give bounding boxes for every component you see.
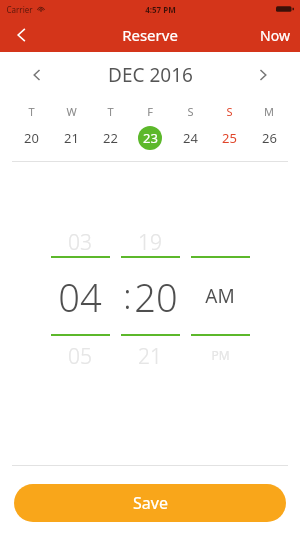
- button[interactable]: Now: [260, 26, 290, 45]
- staticText: 20: [24, 129, 39, 147]
- staticText: 24: [183, 129, 198, 147]
- button[interactable]: Next month: [246, 58, 280, 92]
- staticText: Now: [260, 26, 290, 45]
- button[interactable]: 03: [45, 228, 115, 254]
- staticText: S: [226, 104, 233, 119]
- staticText: T: [28, 104, 35, 119]
- staticText: 04: [58, 271, 102, 321]
- button[interactable]: 05: [45, 342, 115, 368]
- staticText: :: [123, 273, 132, 319]
- staticText: AM: [205, 283, 235, 309]
- button[interactable]: Back: [0, 18, 44, 52]
- staticText: T: [107, 104, 114, 119]
- staticText: 25: [222, 129, 237, 147]
- button[interactable]: 21: [115, 342, 185, 368]
- staticText: DEC 2016: [108, 62, 193, 88]
- button[interactable]: 26: [252, 125, 286, 151]
- staticText: M: [264, 104, 274, 119]
- button[interactable]: PM: [185, 342, 255, 368]
- staticText: F: [147, 104, 153, 119]
- staticText: 19: [138, 228, 162, 254]
- button[interactable]: 21: [54, 125, 88, 151]
- staticText: 20: [134, 271, 178, 321]
- staticText: W: [66, 104, 77, 119]
- button[interactable]: Previous month: [20, 58, 54, 92]
- staticText: Save: [133, 492, 168, 514]
- button[interactable]: 20: [14, 125, 48, 151]
- button[interactable]: 23: [133, 125, 167, 151]
- button[interactable]: 22: [93, 125, 127, 151]
- staticText: 21: [64, 129, 79, 147]
- staticText: Reserve: [122, 25, 178, 45]
- staticText: Carrier: [6, 4, 33, 15]
- staticText: S: [187, 104, 194, 119]
- button[interactable]: 19: [115, 228, 185, 254]
- button[interactable]: Save: [14, 484, 286, 522]
- button[interactable]: 24: [173, 125, 207, 151]
- staticText: 22: [103, 129, 118, 147]
- staticText: 4:57 PM: [145, 4, 176, 15]
- staticText: 03: [68, 228, 92, 254]
- staticText: 21: [138, 342, 162, 368]
- staticText: 26: [262, 129, 277, 147]
- button[interactable]: 25: [212, 125, 246, 151]
- staticText: PM: [211, 347, 230, 363]
- staticText: 23: [143, 129, 158, 147]
- staticText: 05: [68, 342, 92, 368]
